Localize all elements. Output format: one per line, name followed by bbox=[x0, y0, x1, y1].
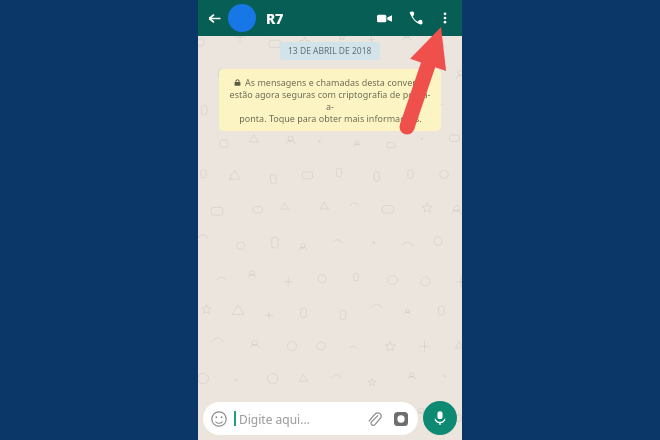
button[interactable]: Attach bbox=[364, 409, 384, 429]
button[interactable]: Contact photo bbox=[228, 4, 256, 32]
staticText: Digite aqui... bbox=[239, 411, 310, 427]
staticText: ponta. Toque para obter mais informações… bbox=[239, 112, 422, 124]
button[interactable]: Video call bbox=[371, 5, 397, 31]
button[interactable]: Emoji bbox=[210, 410, 228, 428]
button[interactable]: Voice call bbox=[403, 5, 429, 31]
button[interactable]: As mensagens e chamadas desta conversa bbox=[219, 69, 441, 131]
staticText: As mensagens e chamadas desta conversa bbox=[245, 76, 426, 88]
staticText: estão agora seguras com criptografia de … bbox=[228, 88, 432, 112]
button[interactable]: Back bbox=[203, 7, 225, 29]
staticText: 13 DE ABRIL DE 2018 bbox=[288, 45, 372, 57]
button[interactable]: Camera bbox=[391, 409, 411, 429]
staticText: R7 bbox=[266, 9, 284, 28]
button[interactable]: More options bbox=[433, 6, 457, 30]
button[interactable]: Voice message bbox=[423, 401, 457, 435]
button[interactable]: Emoji bbox=[203, 402, 418, 435]
button[interactable]: 13 DE ABRIL DE 2018 bbox=[280, 42, 380, 60]
button[interactable]: R7 bbox=[266, 0, 371, 36]
